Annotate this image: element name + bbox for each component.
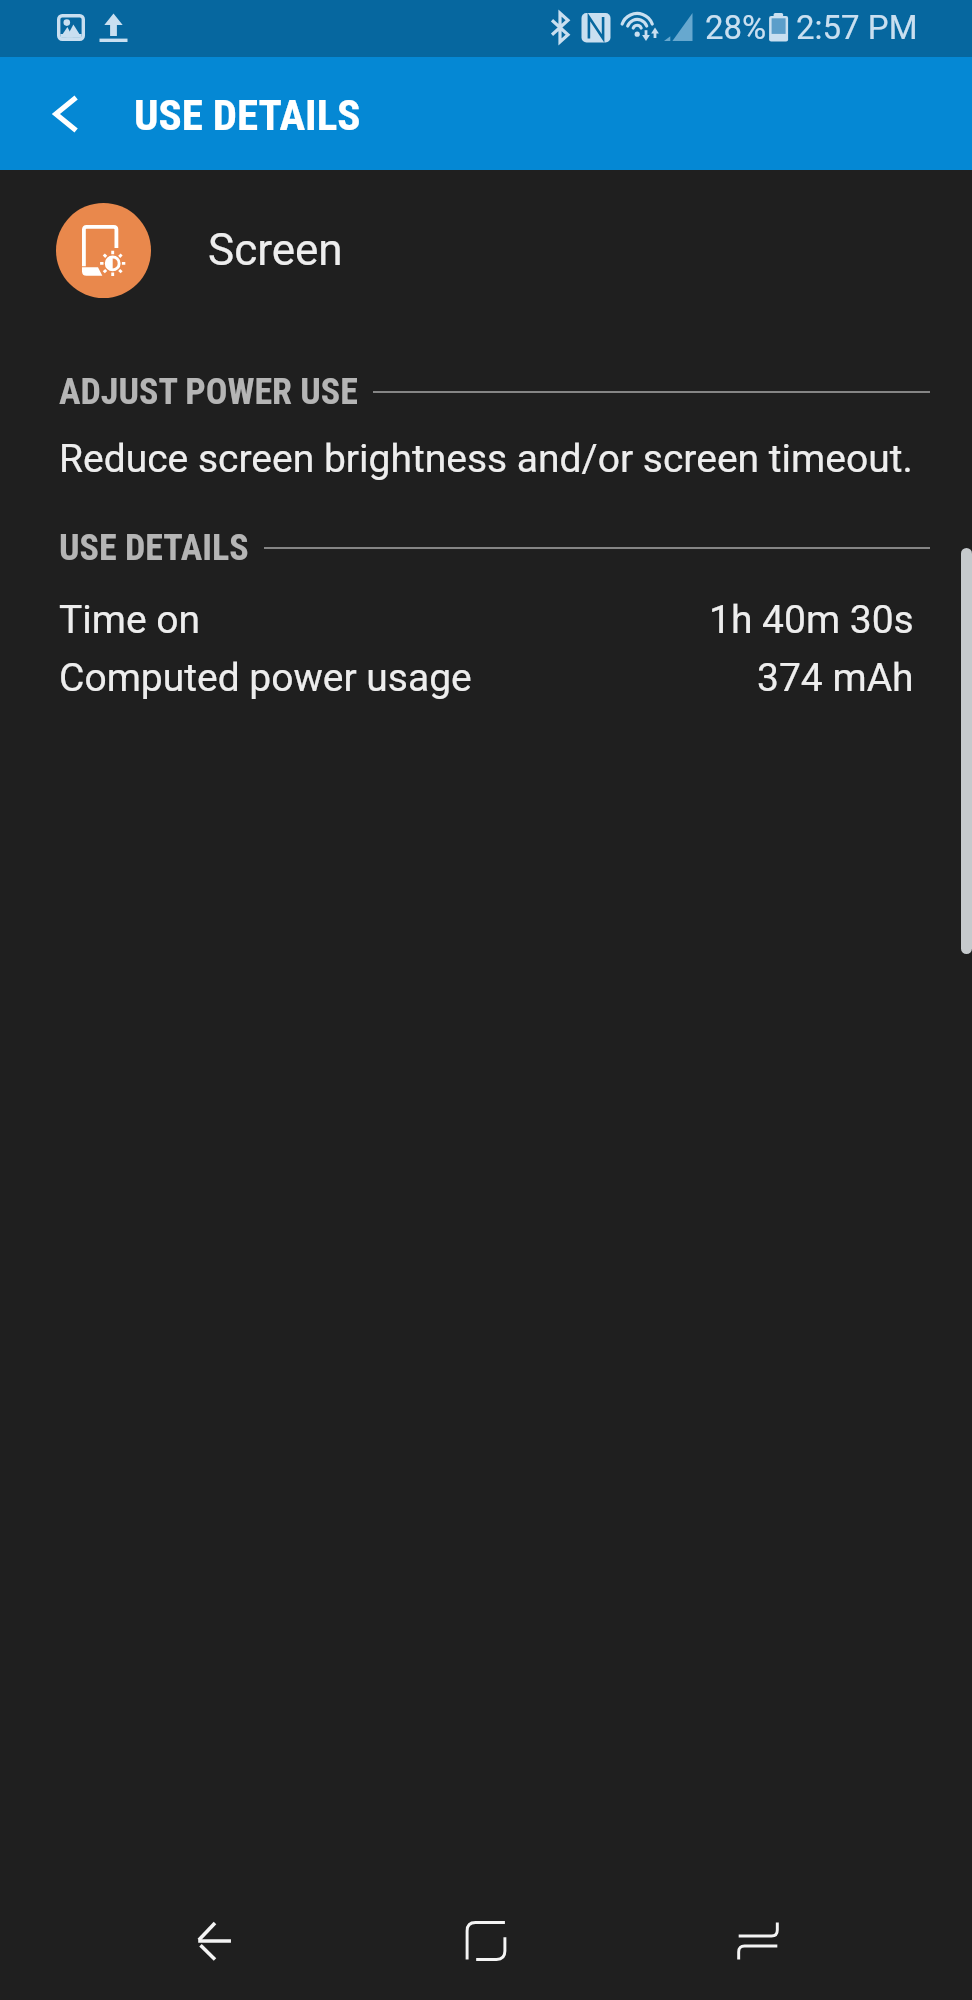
button[interactable]: Back	[147, 1882, 283, 2000]
staticText: 1h 40m 30s	[709, 597, 914, 643]
button[interactable]: Computed power usage	[0, 649, 972, 707]
button[interactable]: Recent apps	[690, 1882, 826, 2000]
staticText: 2:57 PM	[796, 8, 918, 47]
staticText: 28%	[705, 8, 767, 47]
button[interactable]: Home	[418, 1882, 554, 2000]
staticText: Screen	[208, 224, 343, 276]
staticText: 374 mAh	[757, 655, 914, 701]
staticText: USE DETAILS	[134, 90, 361, 140]
staticText: ADJUST POWER USE	[59, 371, 358, 413]
staticText: Time on	[59, 597, 201, 643]
staticText: Reduce screen brightness and/or screen t…	[59, 436, 913, 482]
button[interactable]: Navigate up	[34, 82, 98, 146]
staticText: Computed power usage	[59, 655, 472, 701]
button[interactable]: Time on	[0, 591, 972, 649]
staticText: USE DETAILS	[59, 527, 249, 569]
button[interactable]: Screen	[0, 197, 972, 303]
